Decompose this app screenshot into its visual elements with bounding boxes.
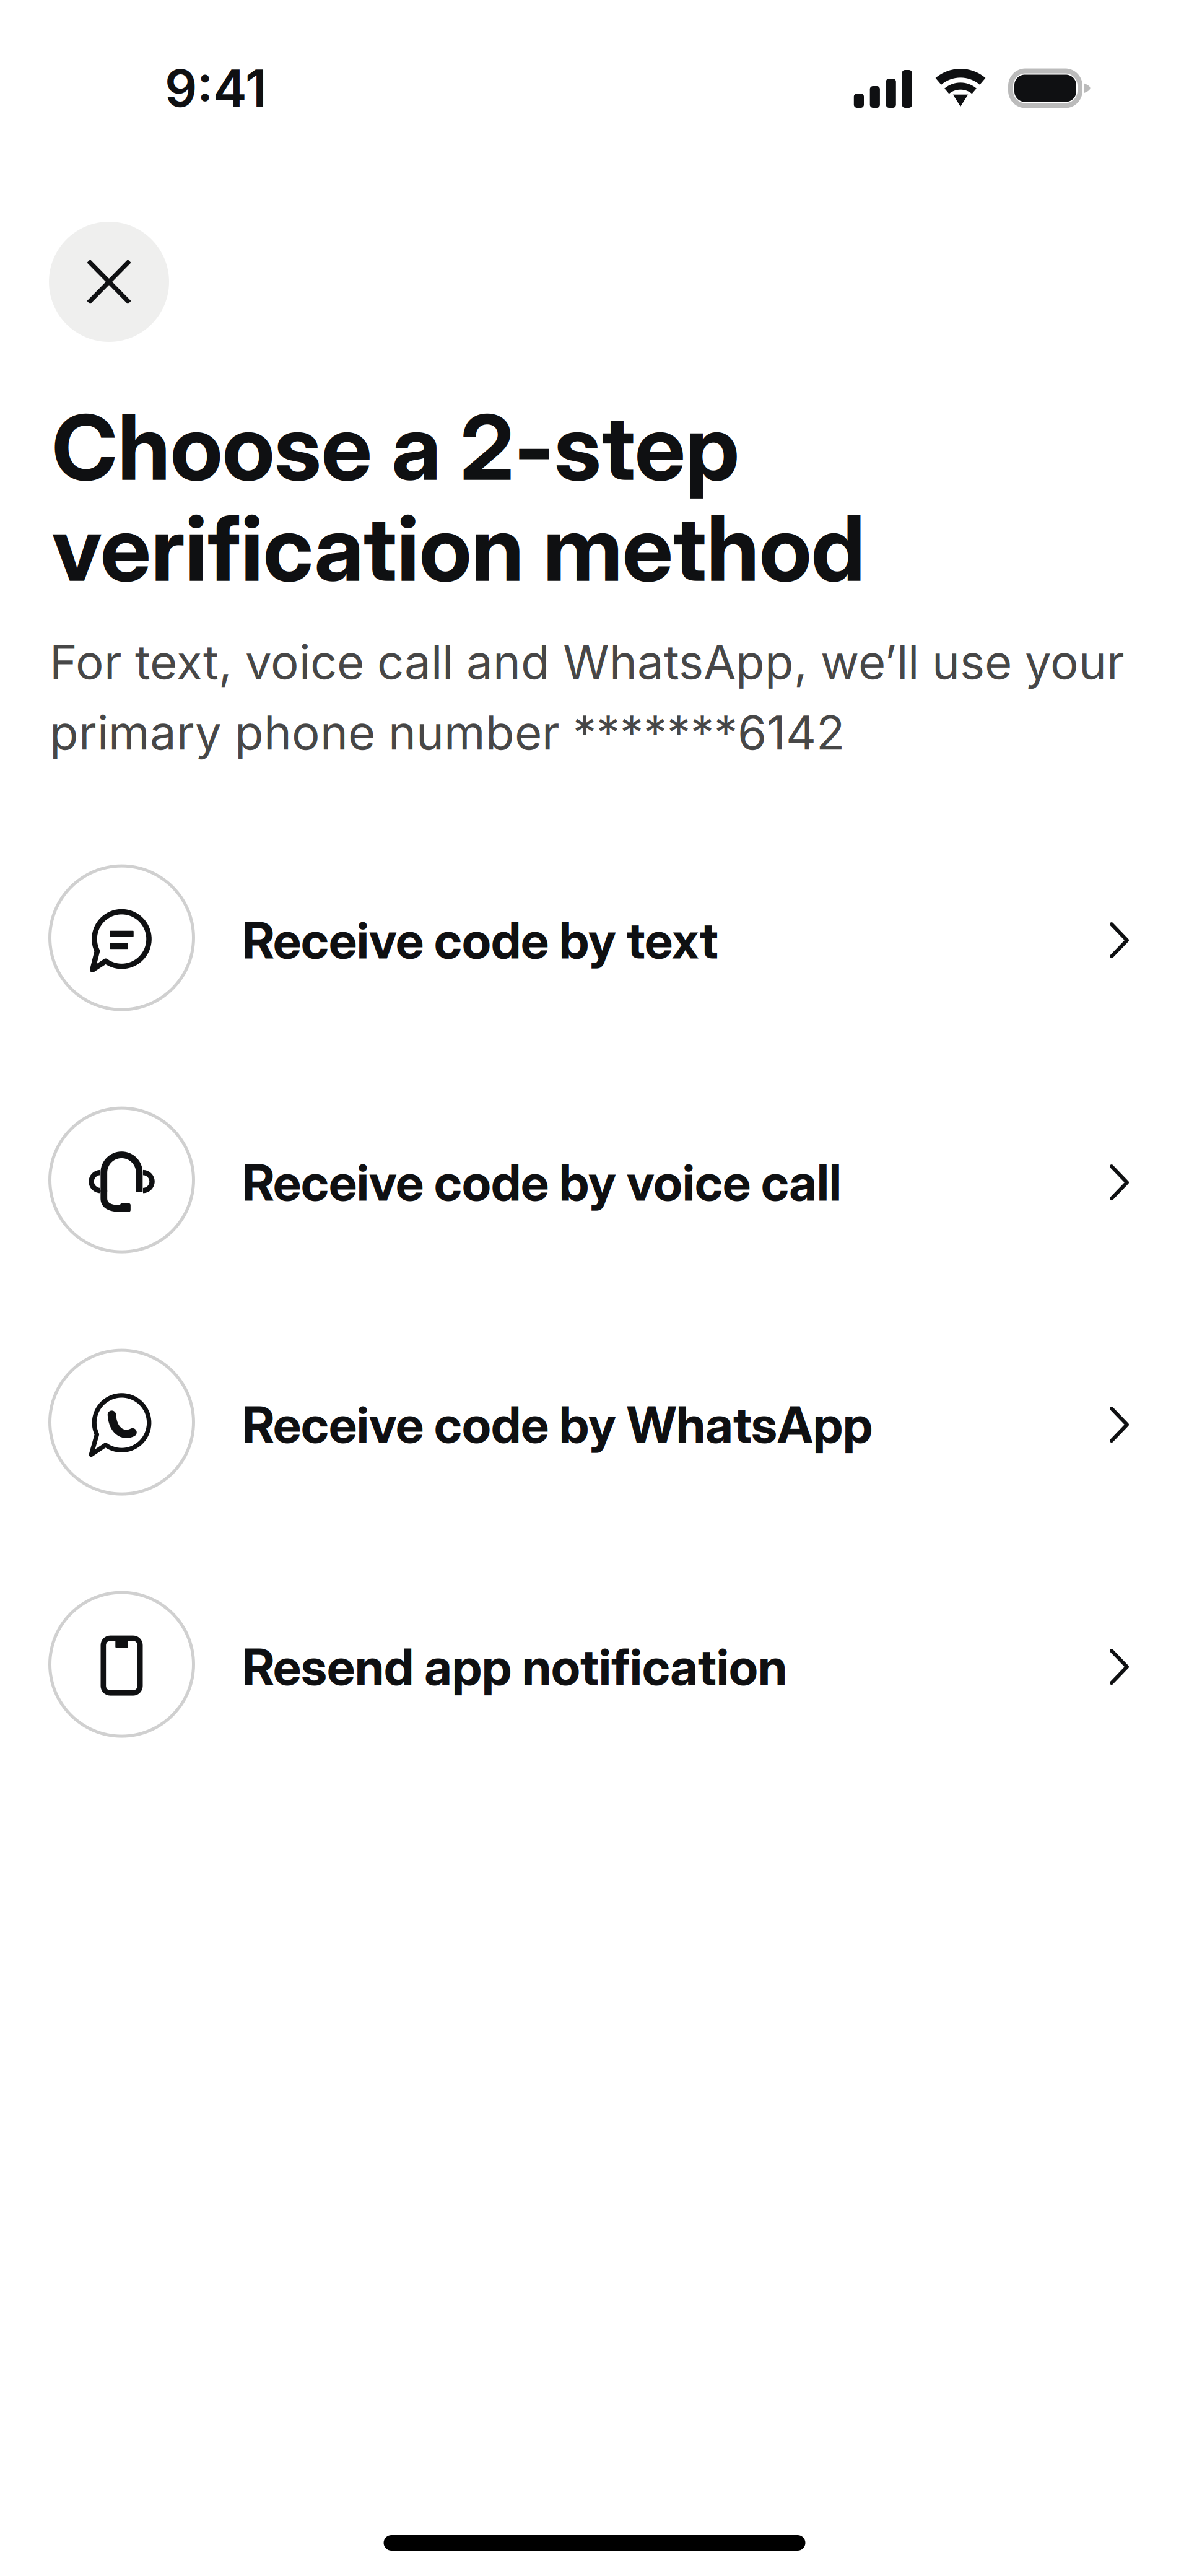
button[interactable]: Resend app notification <box>48 1591 1129 1738</box>
button[interactable]: Receive code by text <box>48 864 1129 1011</box>
staticText: 9:41 <box>165 58 267 119</box>
staticText: Resend app notification <box>242 1637 787 1697</box>
button[interactable]: Receive code by voice call <box>48 1107 1129 1253</box>
staticText: For text, voice call and WhatsApp, we’ll… <box>50 633 1125 690</box>
button[interactable]: Receive code by WhatsApp <box>48 1349 1129 1496</box>
staticText: primary phone number *******6142 <box>50 704 845 761</box>
staticText: Receive code by WhatsApp <box>242 1394 873 1455</box>
staticText: Choose a 2-step <box>52 393 739 502</box>
staticText: Receive code by text <box>242 910 718 971</box>
staticText: Receive code by voice call <box>242 1152 842 1213</box>
button[interactable]: Close <box>49 222 169 342</box>
staticText: verification method <box>52 494 865 602</box>
